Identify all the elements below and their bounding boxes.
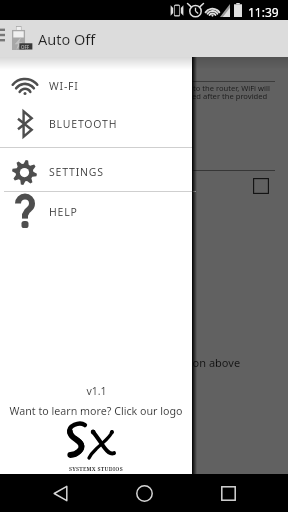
button[interactable]: HELP [0,190,192,234]
button[interactable]: SystemX Studios logo [67,419,124,473]
staticText: Want to learn more? Click our logo [9,404,183,419]
staticText: v1.1 [86,384,107,398]
button[interactable]: Home [120,474,168,512]
button[interactable]: WI-FI [0,64,192,108]
staticText: HELP [49,205,78,219]
button[interactable]: BLUETOOTH [0,102,192,146]
staticText: SYSTEMX STUDIOS [69,465,123,472]
staticText: OFF [21,44,29,50]
button[interactable]: Open navigation drawer [0,20,10,55]
staticText: Auto Off [38,29,96,49]
staticText: When connected to the router, WiFi will [131,83,270,93]
button[interactable]: SETTINGS [0,150,192,194]
staticText: selection above [160,355,241,370]
button[interactable]: Recent apps [204,474,252,512]
staticText: 11:39 [248,4,279,20]
staticText: WI-FI [49,79,79,93]
staticText: BLUETOOTH [49,117,118,131]
staticText: be disabled after the provided [160,91,268,101]
staticText: SETTINGS [49,165,104,179]
button[interactable]: Back [36,474,84,512]
